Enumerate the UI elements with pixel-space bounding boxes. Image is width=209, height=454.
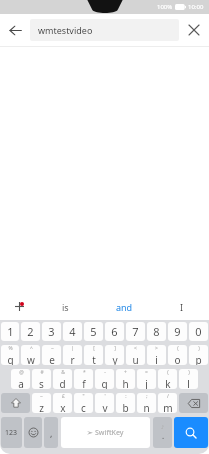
staticText: u [132, 353, 139, 365]
button[interactable]: [ [84, 345, 103, 365]
button[interactable]: : [116, 393, 135, 413]
button[interactable]: ^ [21, 345, 40, 365]
button[interactable]: + [116, 369, 135, 389]
button[interactable]: ~ [42, 345, 61, 365]
button[interactable]: 6 [105, 322, 124, 341]
staticText: ] [114, 345, 116, 352]
button[interactable]: 9 [168, 322, 187, 341]
staticText: e [49, 353, 55, 365]
button[interactable]: ' [95, 393, 114, 413]
staticText: ' [104, 393, 106, 400]
staticText: [ [93, 345, 95, 352]
staticText: m [163, 401, 173, 413]
staticText: t [92, 353, 96, 365]
staticText: I [180, 301, 184, 313]
staticText: c [81, 401, 86, 413]
button[interactable]: is [38, 293, 93, 320]
staticText: h [122, 377, 129, 389]
staticText: ~ [40, 393, 43, 400]
staticText: wmtestvideo [38, 24, 93, 36]
button[interactable]: Backspace [179, 393, 208, 413]
staticText: 3 [48, 324, 55, 339]
staticText: # [40, 369, 44, 376]
staticText: 2 [27, 324, 34, 339]
button[interactable]: ♪ [153, 417, 172, 448]
button[interactable]: @ [11, 369, 30, 389]
staticText: b [122, 401, 129, 413]
staticText: , [50, 427, 53, 439]
staticText: w [27, 353, 35, 365]
staticText: 100% [157, 3, 173, 11]
button[interactable]: , [44, 417, 58, 448]
button[interactable]: ~ [32, 393, 51, 413]
staticText: 4 [69, 324, 76, 339]
staticText: f [82, 377, 86, 389]
button[interactable]: ] [105, 345, 124, 365]
button[interactable]: < [126, 345, 145, 365]
staticText: ♪ [161, 424, 165, 430]
button[interactable]: | [63, 345, 82, 365]
staticText: ~ [51, 345, 54, 352]
staticText: ( [177, 345, 179, 352]
button[interactable]: & [53, 369, 72, 389]
button[interactable]: 123 [1, 417, 22, 448]
button[interactable]: 4 [63, 322, 82, 341]
staticText: k [165, 377, 171, 389]
button[interactable]: ) [179, 369, 198, 389]
button[interactable]: = [137, 369, 156, 389]
staticText: y [112, 353, 118, 365]
staticText: - [104, 369, 106, 376]
staticText: x [60, 401, 66, 413]
staticText: ) [198, 345, 200, 352]
button[interactable]: # [32, 369, 51, 389]
button[interactable]: / [158, 393, 177, 413]
staticText: & [61, 369, 65, 376]
staticText: ) [188, 369, 190, 376]
button[interactable]: ( [168, 345, 187, 365]
staticText: p [195, 353, 202, 365]
button[interactable]: - [95, 369, 114, 389]
button[interactable]: Space [61, 417, 150, 448]
button[interactable]: % [1, 345, 19, 365]
button[interactable]: £ [53, 393, 72, 413]
staticText: SwiftKey [95, 428, 124, 438]
staticText: 0 [195, 324, 202, 339]
button[interactable]: I [155, 293, 209, 320]
button[interactable]: 3 [42, 322, 61, 341]
staticText: 123 [5, 428, 18, 438]
button[interactable]: and [93, 293, 155, 320]
button[interactable]: Search [174, 417, 208, 448]
staticText: ^ [30, 345, 33, 352]
button[interactable]: Back [0, 14, 30, 46]
button[interactable]: ) [189, 345, 208, 365]
button[interactable]: 1 [1, 322, 19, 341]
button[interactable]: Add clipboard [0, 293, 38, 320]
button[interactable]: 7 [126, 322, 145, 341]
button[interactable]: wmtestvideo [30, 19, 179, 41]
staticText: . [162, 430, 165, 441]
staticText: * [83, 369, 86, 376]
staticText: : [125, 393, 127, 400]
button[interactable]: Shift [1, 393, 30, 413]
staticText: 5 [90, 324, 97, 339]
button[interactable]: " [74, 393, 93, 413]
staticText: r [70, 353, 75, 365]
staticText: ; [146, 393, 148, 400]
staticText: j [145, 377, 148, 389]
button[interactable]: 0 [189, 322, 208, 341]
staticText: v [102, 401, 108, 413]
button[interactable]: * [74, 369, 93, 389]
button[interactable]: Clear [179, 14, 209, 46]
button[interactable]: 8 [147, 322, 166, 341]
staticText: £ [62, 393, 65, 400]
button[interactable]: > [147, 345, 166, 365]
staticText: > [155, 345, 158, 352]
button[interactable]: ; [137, 393, 156, 413]
button[interactable]: 5 [84, 322, 103, 341]
button[interactable]: 2 [21, 322, 40, 341]
staticText: and [116, 301, 133, 313]
staticText: d [59, 377, 66, 389]
button[interactable]: Emoji [24, 417, 42, 448]
staticText: n [143, 401, 150, 413]
button[interactable]: ( [158, 369, 177, 389]
